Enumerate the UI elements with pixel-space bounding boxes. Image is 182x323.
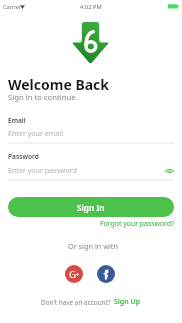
staticText: Sign in to continue (8, 92, 76, 102)
staticText: Forgot your password? (100, 219, 175, 228)
staticText: Enter your email (8, 128, 64, 138)
staticText: Or sign in with (68, 241, 118, 251)
staticText: Sign Up (114, 297, 141, 307)
staticText: 4:02 PM (80, 3, 102, 11)
button[interactable]: Sign Up (114, 297, 141, 307)
staticText: Password (8, 152, 39, 161)
button[interactable]: Sign in with Google (65, 265, 83, 283)
staticText: Don't have an account? (41, 298, 111, 307)
staticText: Email (8, 116, 26, 125)
staticText: Carrier (3, 3, 22, 11)
button[interactable]: Sign in with Facebook (97, 265, 115, 283)
staticText: Sign In (77, 202, 105, 213)
button[interactable]: Show password (162, 164, 176, 178)
staticText: Enter your password (8, 165, 77, 175)
staticText: Welcome Back (8, 75, 110, 94)
staticText: G (69, 268, 76, 281)
button[interactable]: Forgot your password? (100, 219, 175, 228)
button[interactable]: Sign In (8, 197, 174, 217)
